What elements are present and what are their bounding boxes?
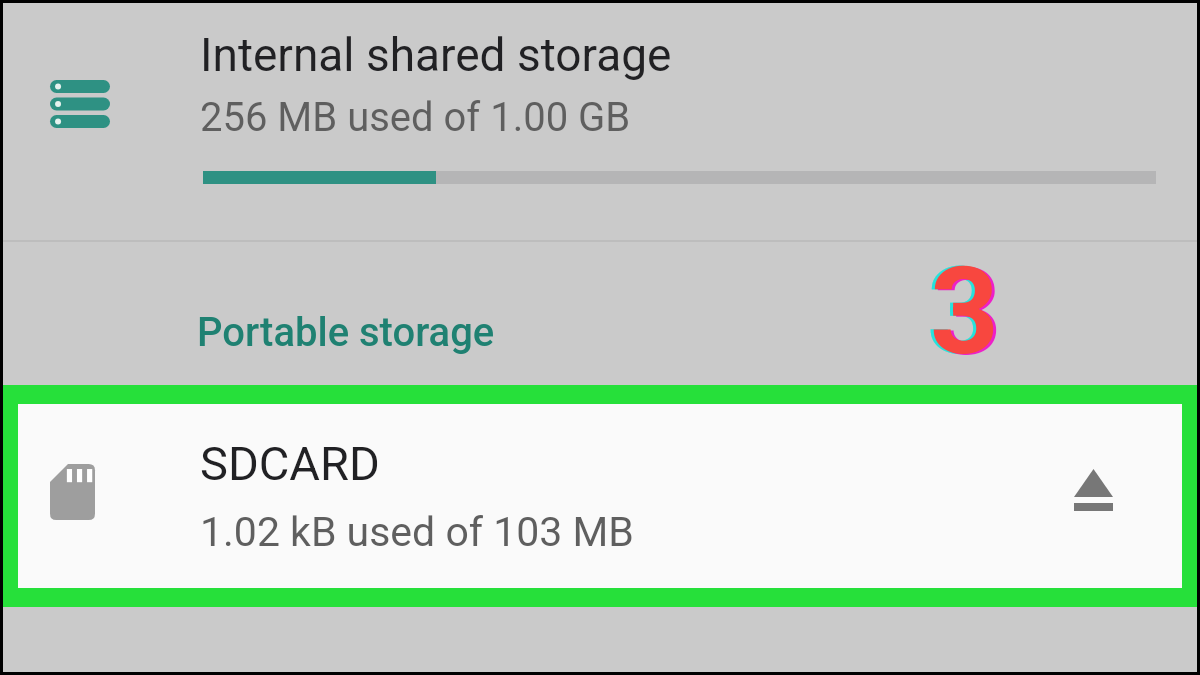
- staticText: Internal shared storage: [200, 28, 672, 82]
- button[interactable]: Internal shared storage: [3, 3, 1197, 240]
- staticText: 3: [933, 243, 1002, 384]
- staticText: 3: [930, 242, 999, 383]
- staticText: SDCARD: [200, 436, 380, 491]
- staticText: 1.02 kB used of 103 MB: [200, 508, 634, 556]
- staticText: 256 MB used of 1.00 GB: [200, 94, 631, 141]
- button[interactable]: SDCARD: [18, 404, 1182, 588]
- button[interactable]: Eject SD card: [1068, 464, 1112, 512]
- staticText: Portable storage: [197, 309, 495, 356]
- staticText: 3: [927, 242, 996, 383]
